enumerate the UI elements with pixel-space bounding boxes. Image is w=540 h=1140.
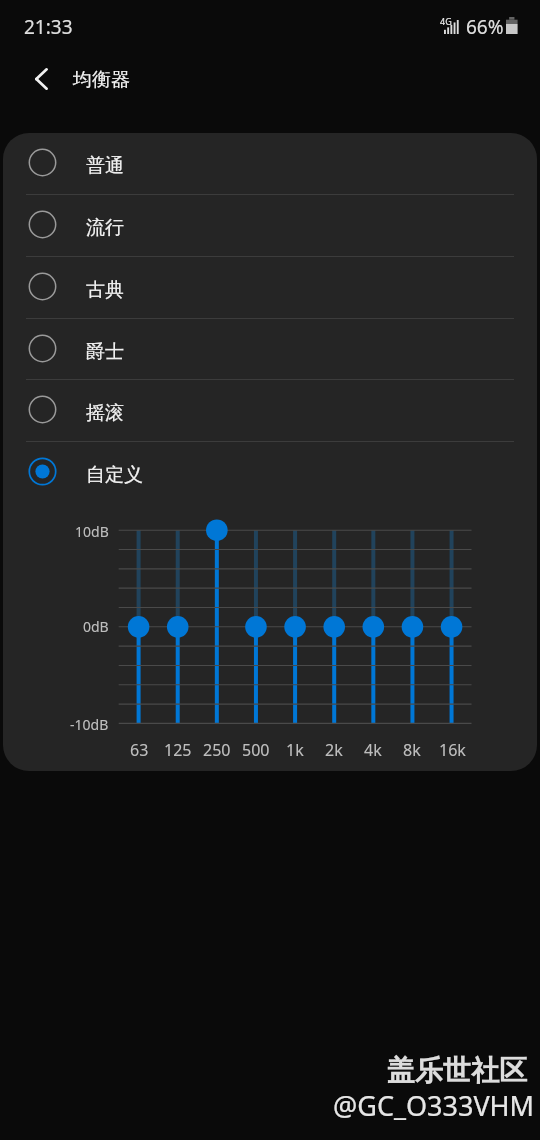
button[interactable]: 250 band level [197,518,236,735]
button[interactable]: 16k band level [432,518,471,735]
staticText: 66% [466,14,504,40]
button[interactable]: 古典 [3,256,537,318]
button[interactable]: 流行 [3,194,537,256]
button[interactable]: 爵士 [3,318,537,380]
staticText: 4k [364,739,382,757]
staticText: @GC_O333VHM [333,1087,535,1124]
button[interactable]: 摇滚 [3,379,537,441]
staticText: 125 [164,739,192,757]
staticText: 1k [286,739,304,757]
button[interactable]: 普通 [3,133,537,194]
button[interactable]: 63 band level [119,518,158,735]
button[interactable]: 4k band level [354,518,393,735]
button[interactable]: 自定义 [3,441,537,503]
staticText: 摇滚 [86,401,124,425]
staticText: 63 [130,739,149,757]
staticText: 250 [203,739,231,757]
staticText: 均衡器 [73,68,130,92]
staticText: 爵士 [86,340,124,364]
staticText: 21:33 [24,14,73,40]
staticText: 盖乐世社区 [387,1053,527,1088]
staticText: -10dB [70,715,109,734]
staticText: 500 [242,739,270,757]
staticText: 8k [403,739,421,757]
button[interactable]: 125 band level [158,518,197,735]
staticText: 普通 [86,154,124,178]
button[interactable]: 2k band level [315,518,354,735]
button[interactable]: Back [20,58,62,100]
staticText: 古典 [86,278,124,302]
staticText: 0dB [83,617,109,636]
button[interactable]: 8k band level [393,518,432,735]
staticText: 16k [439,739,466,757]
staticText: 2k [325,739,343,757]
button[interactable]: 1k band level [276,518,315,735]
staticText: 流行 [86,216,124,240]
staticText: 自定义 [86,463,143,487]
staticText: 4G [440,15,452,27]
staticText: 10dB [75,522,109,541]
button[interactable]: 500 band level [236,518,275,735]
